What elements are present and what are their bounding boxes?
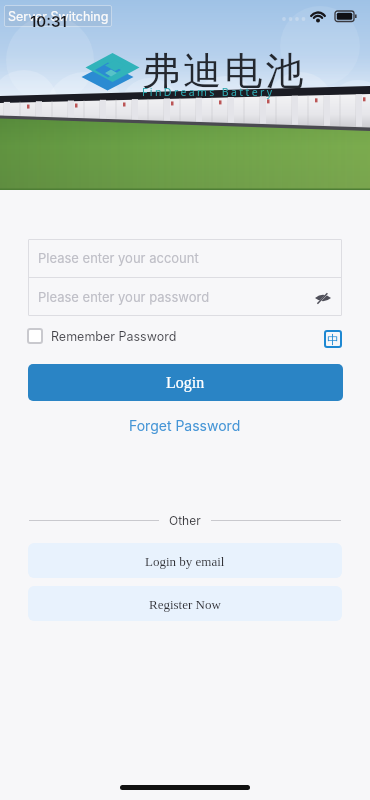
staticText: 10:31 bbox=[30, 12, 67, 30]
button[interactable]: Please enter your account bbox=[28, 239, 342, 277]
staticText: Remember Password bbox=[51, 329, 177, 344]
staticText: Login by email bbox=[145, 554, 225, 568]
staticText: Server Switching bbox=[8, 9, 109, 24]
staticText: Register Now bbox=[149, 597, 221, 611]
staticText: 弗迪电池 bbox=[142, 47, 307, 95]
staticText: Please enter your password bbox=[38, 289, 210, 305]
button[interactable]: Please enter your password bbox=[28, 278, 342, 316]
staticText: 中 bbox=[327, 332, 339, 347]
button[interactable]: Login by email bbox=[28, 543, 342, 578]
staticText: Login bbox=[166, 374, 205, 392]
button[interactable]: 中 bbox=[324, 330, 342, 348]
button[interactable]: Server Switching bbox=[4, 5, 112, 27]
staticText: Forget Password bbox=[129, 417, 241, 434]
button[interactable]: Login bbox=[28, 364, 343, 401]
staticText: Other bbox=[169, 513, 201, 528]
staticText: FinDreams Battery bbox=[142, 85, 275, 99]
staticText: Please enter your account bbox=[38, 250, 199, 266]
button[interactable]: Forget Password bbox=[0, 417, 370, 434]
button[interactable]: Register Now bbox=[28, 586, 342, 621]
button[interactable]: Remember Password bbox=[27, 328, 177, 344]
